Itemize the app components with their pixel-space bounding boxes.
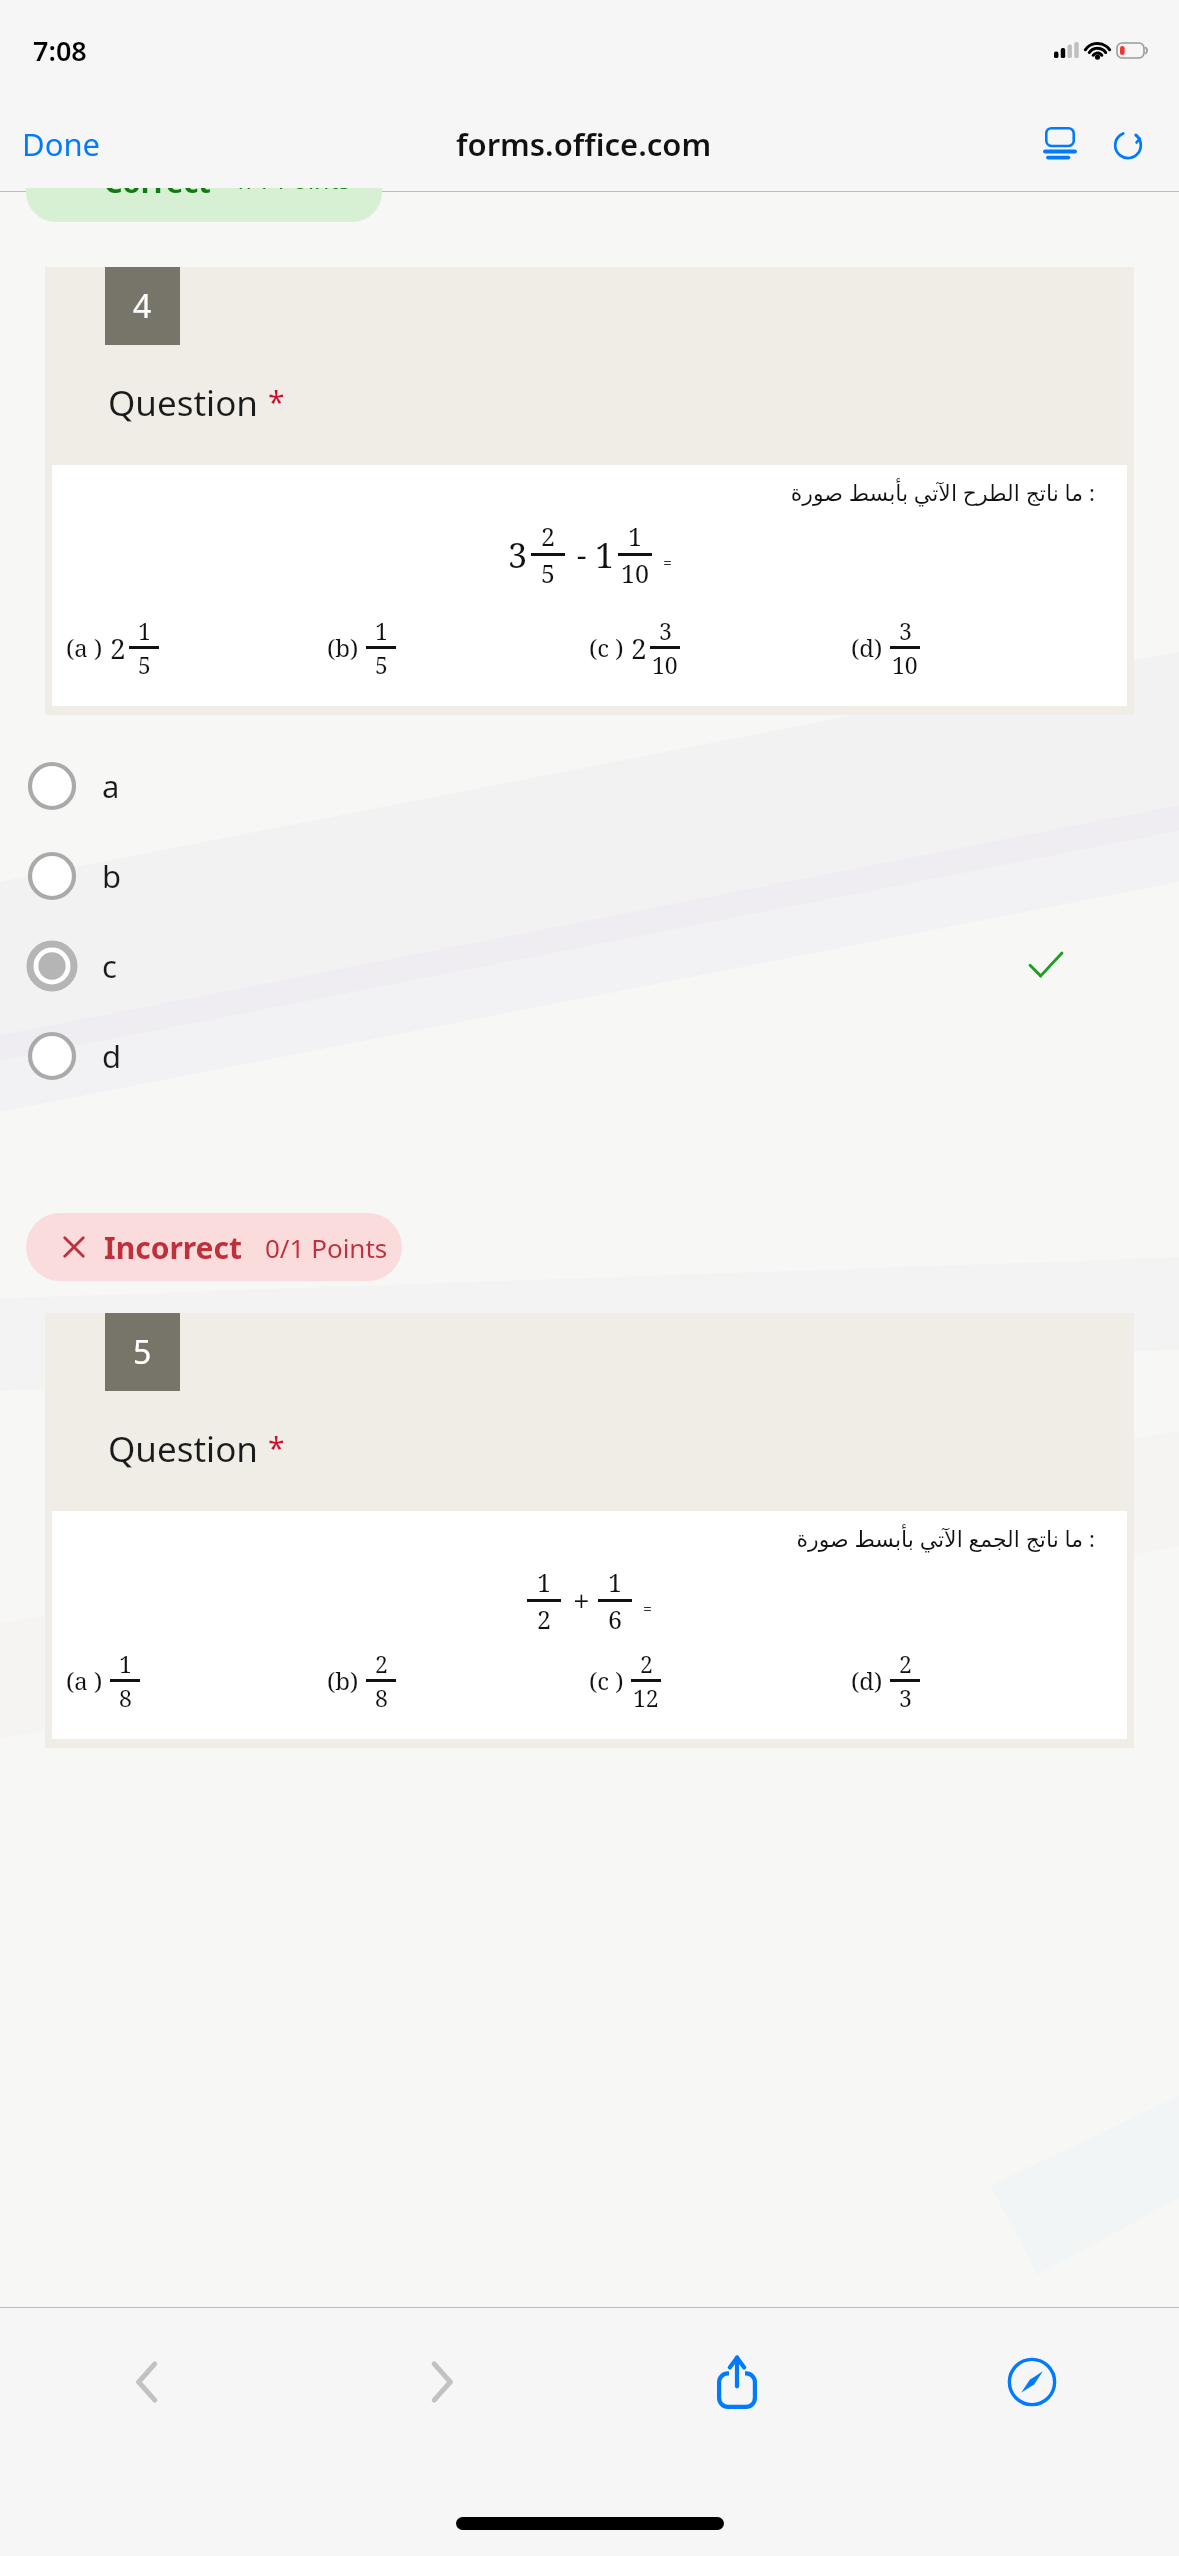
staticText: 1/1 Points [233,188,351,196]
staticText: 8 [119,1682,132,1713]
staticText: = [663,552,672,574]
button[interactable]: Reload [1099,115,1157,173]
staticText: b [102,855,122,897]
staticText: 12 [633,1682,659,1713]
staticText: = [643,1598,652,1620]
staticText: - [577,534,587,575]
staticText: Question [108,379,258,427]
staticText: 10 [621,556,649,590]
button[interactable]: b [0,831,1179,921]
button[interactable]: 5 [45,1313,1134,1748]
staticText: 2 [541,519,555,553]
button[interactable]: Share [589,2307,884,2457]
staticText: 1 [608,1565,622,1599]
staticText: 5 [133,1330,152,1374]
staticText: 1 [595,532,615,578]
staticText: 1 [537,1565,551,1599]
staticText: a [102,765,120,807]
button[interactable]: Correct [26,188,382,222]
staticText: 1 [119,1648,132,1679]
staticText: d [102,1035,122,1077]
staticText: 10 [892,649,918,680]
staticText: 2 [899,1648,912,1679]
staticText: (c ) [589,1664,624,1697]
staticText: (a ) [66,1664,103,1697]
staticText: Question [108,1425,258,1473]
staticText: Incorrect [104,1227,243,1268]
button[interactable]: Page settings [1031,115,1089,173]
staticText: (b) [327,631,359,664]
staticText: 5 [541,556,555,590]
staticText: 2 [631,629,647,667]
staticText: 1 [138,615,151,646]
staticText: 1 [375,615,388,646]
staticText: 4 [133,284,152,328]
staticText: 2 [110,629,126,667]
staticText: (b) [327,1664,359,1697]
staticText: 5 [138,649,151,680]
button[interactable]: Bookmarks [884,2307,1179,2457]
staticText: * [268,1427,285,1468]
staticText: ما ناتج الجمع الآتي بأبسط صورة : [52,1523,1095,1553]
staticText: 3 [659,615,672,646]
button[interactable]: Done [0,113,123,175]
staticText: 6 [608,1602,622,1636]
button[interactable]: 4 [45,267,1134,715]
button[interactable]: Forward [294,2307,589,2457]
staticText: 2 [640,1648,653,1679]
staticText: + [573,1580,590,1621]
staticText: Correct [104,188,211,196]
button[interactable]: c [0,921,1179,1011]
staticText: 3 [899,1682,912,1713]
staticText: * [268,381,285,422]
staticText: (c ) [589,631,624,664]
staticText: 3 [899,615,912,646]
staticText: (d) [851,1664,883,1697]
staticText: c [102,945,117,987]
staticText: Done [22,123,101,165]
staticText: forms.office.com [456,123,712,165]
staticText: 5 [375,649,388,680]
staticText: 2 [375,1648,388,1679]
staticText: (d) [851,631,883,664]
button[interactable]: Incorrect [26,1213,402,1281]
staticText: 10 [652,649,678,680]
button[interactable]: d [0,1011,1179,1101]
staticText: 8 [375,1682,388,1713]
staticText: 7:08 [33,32,87,69]
staticText: 2 [537,1602,551,1636]
staticText: ما ناتج الطرح الآتي بأبسط صورة : [52,477,1095,507]
staticText: 1 [628,519,642,553]
staticText: (a ) [66,631,103,664]
button[interactable]: Back [0,2307,294,2457]
staticText: 3 [508,532,528,578]
staticText: 0/1 Points [265,1230,388,1265]
button[interactable]: a [0,741,1179,831]
